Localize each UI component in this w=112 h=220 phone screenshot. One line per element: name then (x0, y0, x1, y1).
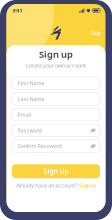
button[interactable]: Password (12, 124, 100, 137)
button[interactable]: Already have an account? (16, 180, 96, 190)
button[interactable]: Confirm Password (12, 140, 100, 152)
button[interactable]: Last Name (12, 93, 100, 105)
button[interactable]: First Name (12, 77, 100, 89)
staticText: Already have an account? (16, 182, 77, 189)
button[interactable]: Email (12, 108, 100, 121)
staticText: Sign In (79, 182, 96, 189)
staticText: Skip (90, 29, 100, 37)
staticText: Sign Up (43, 167, 68, 176)
staticText: Confirm Password (17, 142, 61, 150)
staticText: First Name (17, 80, 44, 87)
staticText: Last Name (17, 95, 44, 102)
staticText: Sign up (39, 48, 73, 60)
staticText: 9:41 (12, 7, 22, 14)
staticText: Password (17, 127, 41, 134)
button[interactable]: Sign Up (12, 164, 100, 178)
staticText: Create your own account (26, 62, 86, 69)
button[interactable]: Skip (85, 27, 105, 39)
staticText: Email (17, 111, 30, 118)
